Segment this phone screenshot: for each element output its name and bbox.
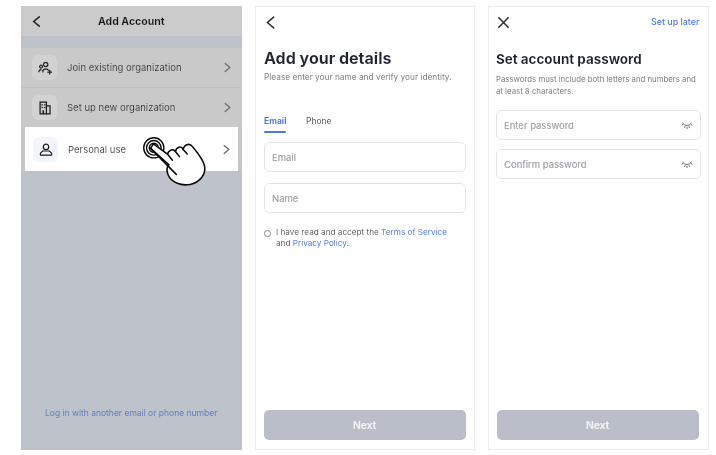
button[interactable] xyxy=(264,230,271,237)
staticText: Confirm password xyxy=(504,159,587,170)
staticText: Set up new organization xyxy=(67,102,176,113)
staticText: Passwords must include both letters and … xyxy=(496,74,701,96)
staticText: Email xyxy=(264,116,287,126)
button[interactable]: Confirm password xyxy=(496,149,701,179)
button[interactable]: Enter password xyxy=(496,110,701,140)
button[interactable]: Close xyxy=(491,10,515,34)
button[interactable]: Phone xyxy=(306,116,332,126)
button[interactable]: Back xyxy=(258,10,282,34)
staticText: Name xyxy=(272,193,299,204)
button[interactable]: Next xyxy=(264,410,466,440)
staticText: Add Account xyxy=(98,15,165,28)
button[interactable]: Log in with another email or phone numbe… xyxy=(21,398,242,428)
staticText: Enter password xyxy=(504,120,574,131)
staticText: Add your details xyxy=(264,48,392,67)
staticText: Set account password xyxy=(496,51,642,67)
staticText: Email xyxy=(272,152,296,163)
staticText: I have read and accept the Terms of Serv… xyxy=(276,227,456,248)
staticText: Personal use xyxy=(68,144,126,155)
staticText: Next xyxy=(353,419,377,432)
staticText: Phone xyxy=(306,116,332,126)
button[interactable]: Personal use xyxy=(25,127,238,171)
button[interactable]: Name xyxy=(264,183,466,213)
button[interactable]: Set up later xyxy=(651,16,700,27)
staticText: Next xyxy=(586,419,610,432)
staticText: Please enter your name and verify your i… xyxy=(264,72,452,82)
button[interactable]: Back xyxy=(21,6,51,36)
button[interactable]: Email xyxy=(264,142,466,172)
button[interactable]: Join existing organization xyxy=(21,48,242,87)
button[interactable]: Set up new organization xyxy=(21,88,242,127)
button[interactable]: Email xyxy=(264,116,287,126)
staticText: Log in with another email or phone numbe… xyxy=(45,408,218,418)
staticText: Join existing organization xyxy=(67,62,182,73)
button[interactable]: Next xyxy=(497,410,699,440)
staticText: Set up later xyxy=(651,16,700,27)
